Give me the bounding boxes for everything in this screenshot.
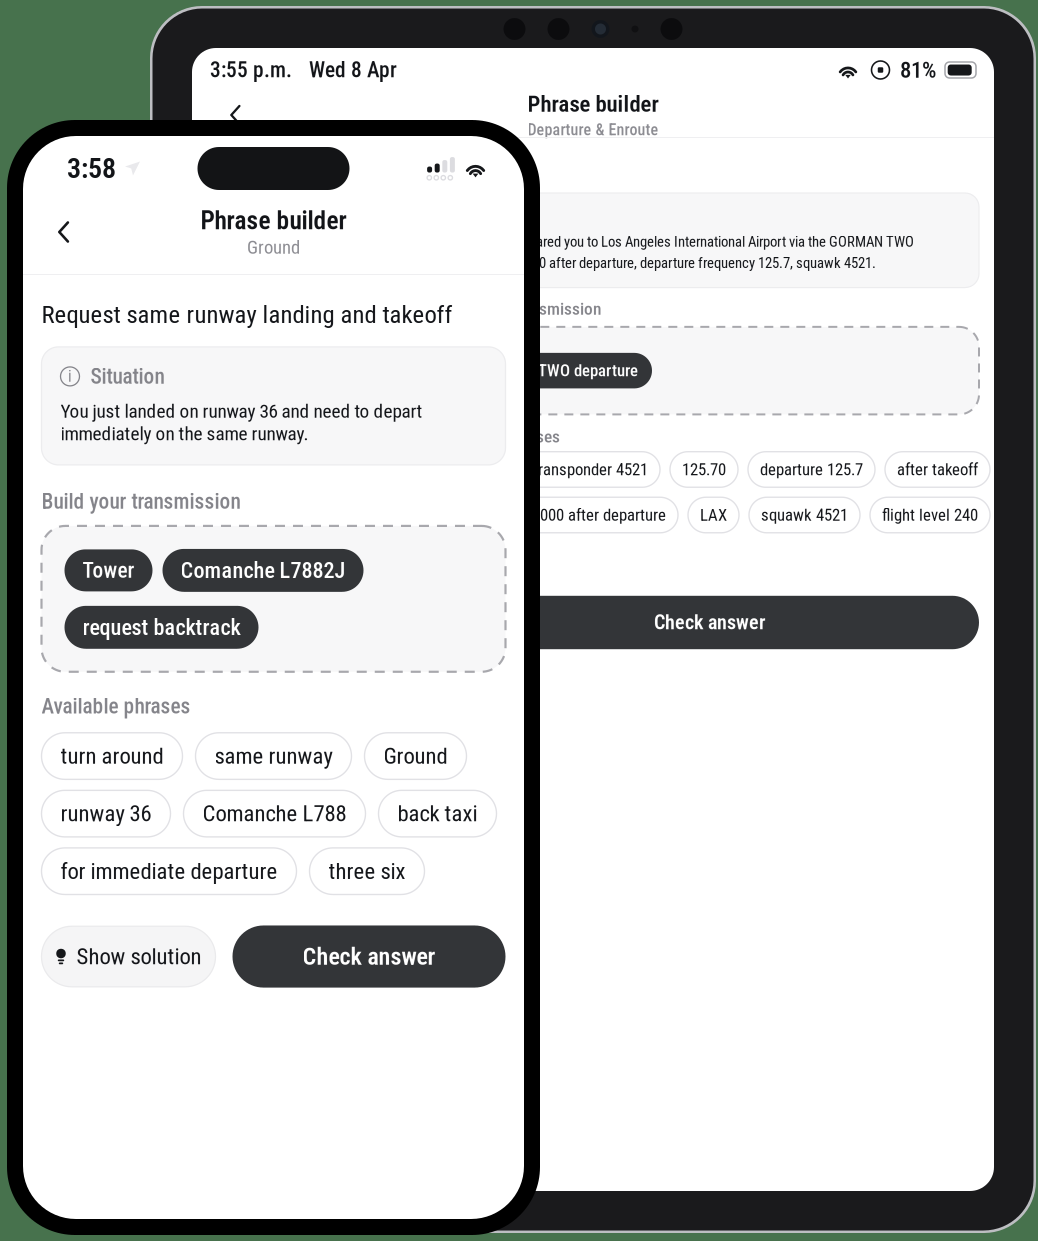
staticText: Check answer	[302, 942, 435, 971]
button[interactable]: departure 125.7	[748, 452, 875, 487]
button[interactable]: Comanche L7882J	[162, 549, 363, 592]
button[interactable]: Check answer	[232, 925, 505, 988]
button[interactable]: maintain 5000 after departure	[458, 497, 678, 533]
button[interactable]: squawk 4521	[749, 497, 860, 533]
button[interactable]: Back	[23, 205, 94, 258]
staticText: Show solution	[76, 943, 201, 970]
button[interactable]: back taxi	[378, 790, 496, 837]
staticText: Tower has cleared you to Los Angeles Int…	[457, 233, 914, 250]
staticText: departure, 5000 after departure, departu…	[457, 254, 876, 272]
staticText: same runway	[214, 743, 332, 769]
button[interactable]: Ground	[364, 733, 466, 779]
staticText: Comanche L788	[202, 800, 346, 827]
button[interactable]: Back	[192, 93, 265, 137]
staticText: i	[68, 367, 72, 386]
staticText: 3:58	[67, 152, 116, 185]
button[interactable]: after takeoff	[885, 452, 990, 487]
staticText: Ground	[383, 743, 447, 769]
staticText: Available phrases	[41, 694, 190, 719]
staticText: maintain 5000 after departure	[470, 505, 666, 525]
button[interactable]: same runway	[195, 733, 351, 779]
staticText: LAX	[700, 505, 727, 525]
staticText: Ground	[247, 236, 300, 258]
staticText: Request same runway landing and takeoff	[41, 300, 452, 329]
staticText: 3:55 p.m.	[210, 57, 292, 82]
staticText: Comanche L7882J	[180, 557, 345, 583]
staticText: turn around	[60, 743, 163, 769]
staticText: GORMAN TWO departure	[473, 361, 638, 380]
button[interactable]: Show solution	[41, 926, 215, 987]
staticText: request backtrack	[82, 614, 240, 640]
staticText: 125.70	[682, 460, 726, 479]
button[interactable]: GORMAN TWO departure	[459, 353, 652, 388]
staticText: Available phrases	[440, 426, 560, 447]
staticText: departure 125.7	[760, 460, 863, 479]
button[interactable]: runway 36	[41, 790, 170, 837]
staticText: Check answer	[654, 611, 765, 634]
staticText: transponder 4521	[533, 460, 648, 479]
staticText: back taxi	[397, 800, 477, 827]
staticText: squawk 4521	[761, 505, 848, 525]
staticText: Phrase builder	[200, 206, 346, 235]
staticText: Situation	[479, 207, 531, 224]
staticText: three six	[328, 858, 405, 884]
button[interactable]: 125.70	[670, 452, 738, 487]
staticText: Build your transmission	[440, 299, 601, 319]
staticText: runway 36	[60, 800, 151, 827]
staticText: Build your transmission	[41, 489, 240, 514]
button[interactable]: three six	[309, 848, 424, 894]
staticText: flight level 240	[882, 505, 978, 525]
button[interactable]: request backtrack	[64, 606, 258, 649]
staticText: for immediate departure	[60, 858, 277, 884]
staticText: after takeoff	[897, 460, 978, 479]
staticText: Phrase builder	[527, 91, 658, 117]
button[interactable]: flight level 240	[870, 497, 990, 533]
staticText: Wed 8 Apr	[309, 57, 397, 82]
button[interactable]: LAX	[688, 497, 739, 533]
staticText: You just landed on runway 36 and need to…	[60, 400, 422, 445]
staticText: Situation	[90, 364, 164, 389]
staticText: 81%	[900, 57, 936, 83]
button[interactable]: Check answer	[440, 596, 979, 649]
button[interactable]: Comanche L788	[183, 790, 365, 837]
staticText: Departure & Enroute	[527, 120, 658, 139]
staticText: Tower	[82, 558, 134, 583]
button[interactable]: transponder 4521	[521, 452, 660, 487]
button[interactable]: turn around	[41, 733, 182, 779]
button[interactable]: for immediate departure	[41, 848, 296, 894]
button[interactable]: Tower	[64, 549, 152, 591]
